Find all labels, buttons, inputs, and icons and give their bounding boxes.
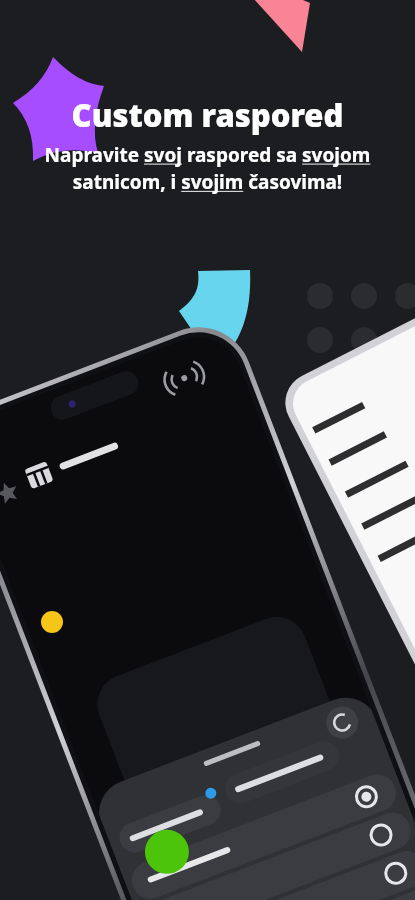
button[interactable]: Napravite svoj raspored sa svojom satnic…: [10, 142, 405, 195]
button[interactable]: Custom raspored: [0, 94, 415, 136]
